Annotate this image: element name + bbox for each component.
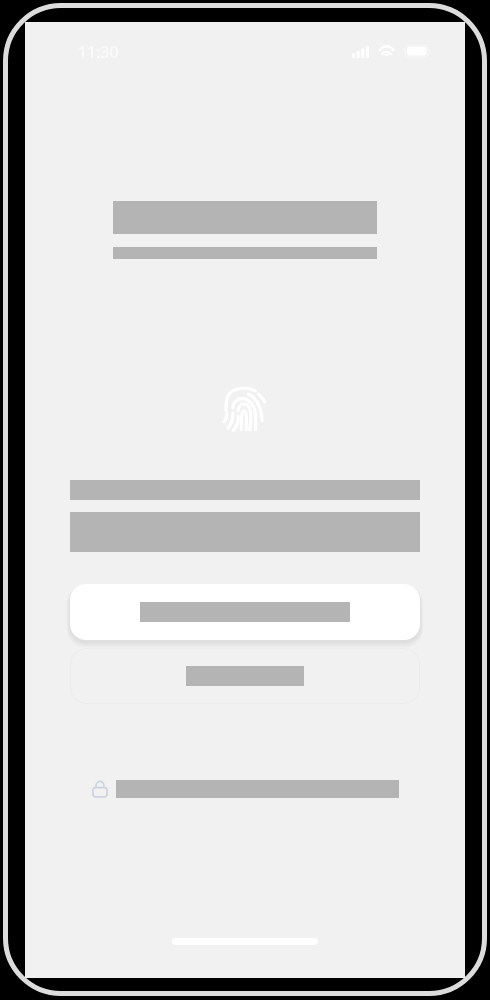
button[interactable]	[70, 584, 420, 640]
staticText: 11:30	[78, 41, 119, 63]
button[interactable]	[70, 648, 420, 704]
